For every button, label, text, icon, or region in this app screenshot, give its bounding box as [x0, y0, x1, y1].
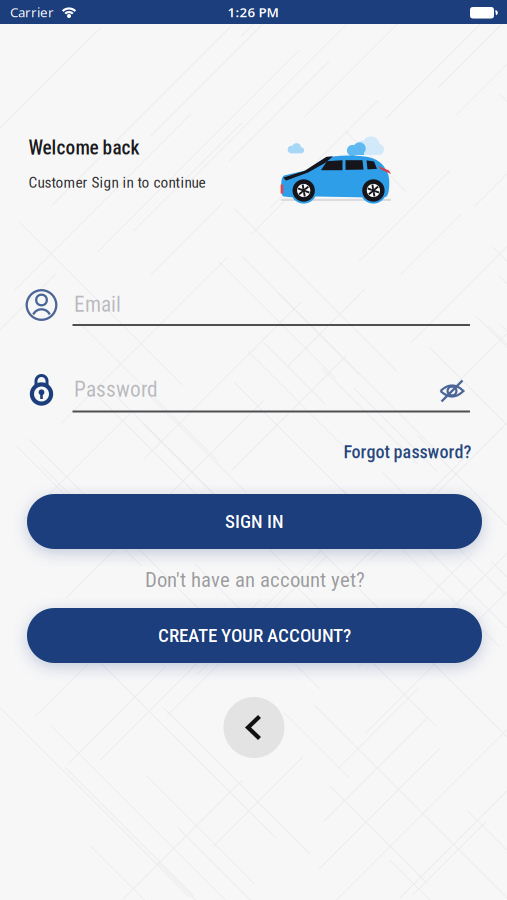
button[interactable]: CREATE YOUR ACCOUNT? [27, 608, 482, 663]
staticText: Forgot password? [343, 441, 471, 463]
button[interactable]: Forgot password? [343, 441, 471, 463]
staticText: Welcome back [28, 137, 139, 159]
staticText: Password [74, 377, 158, 402]
staticText: CREATE YOUR ACCOUNT? [158, 624, 351, 647]
staticText: Don't have an account yet? [145, 568, 365, 592]
button[interactable]: Back [223, 697, 284, 758]
staticText: Carrier [10, 3, 54, 21]
staticText: Email [74, 292, 121, 317]
button[interactable]: Show password [435, 375, 469, 407]
staticText: 1:26 PM [227, 3, 278, 21]
staticText: SIGN IN [225, 510, 284, 532]
staticText: Customer Sign in to continue [28, 173, 205, 191]
button[interactable]: SIGN IN [27, 494, 482, 549]
